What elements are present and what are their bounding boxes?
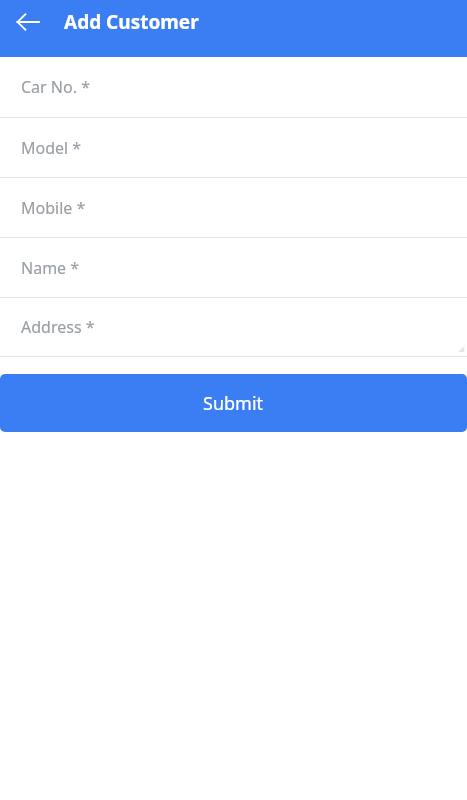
button[interactable]: Name * [0, 238, 467, 297]
button[interactable]: Submit [0, 374, 467, 432]
staticText: Car No. * [21, 76, 90, 98]
staticText: Add Customer [64, 9, 199, 35]
staticText: Name * [21, 257, 80, 279]
button[interactable]: Address * [0, 298, 467, 356]
button[interactable]: Mobile * [0, 178, 467, 237]
button[interactable]: Car No. * [0, 57, 467, 117]
button[interactable]: Model * [0, 118, 467, 177]
button[interactable]: Back [6, 0, 50, 44]
staticText: Submit [203, 391, 264, 416]
staticText: Model * [21, 137, 82, 159]
staticText: Address * [21, 316, 95, 338]
staticText: Mobile * [21, 197, 86, 219]
